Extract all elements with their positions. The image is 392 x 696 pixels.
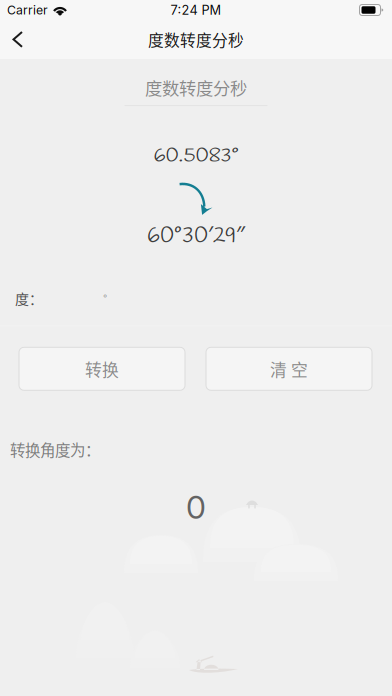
staticText: Carrier [7,3,48,17]
staticText: 60°30′29″ [147,219,245,251]
staticText: ° [103,292,107,304]
staticText: 转换角度为： [10,438,100,461]
staticText: 7:24 PM [170,2,221,18]
staticText: 转换 [85,357,119,381]
button[interactable]: Back [0,21,40,58]
staticText: 度数转度分秒 [145,75,247,100]
staticText: 清 空 [270,357,308,381]
staticText: 0 [186,488,206,526]
button[interactable]: 清 空 [206,347,372,390]
staticText: 度： [15,288,43,308]
staticText: 60.5083° [153,142,238,170]
staticText: 度数转度分秒 [148,28,244,51]
button[interactable]: 转换 [19,347,185,390]
